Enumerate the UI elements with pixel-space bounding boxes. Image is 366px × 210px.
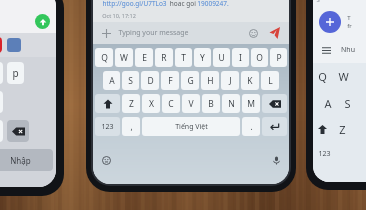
staticText: http://goo.gl/U7TLo3 <box>102 0 167 8</box>
staticText: Nhu <box>341 45 355 55</box>
button[interactable]: o <box>0 62 3 84</box>
staticText: Z <box>129 98 134 110</box>
staticText: . <box>250 121 253 132</box>
staticText: L <box>268 75 273 87</box>
button[interactable]: X <box>142 94 160 113</box>
button[interactable]: C <box>162 94 180 113</box>
staticText: J <box>229 75 232 87</box>
button[interactable]: Z <box>122 94 140 113</box>
button[interactable]: M <box>242 94 260 113</box>
staticText: N <box>228 98 235 110</box>
button[interactable]: Voice input <box>269 153 283 167</box>
button[interactable]: Compose <box>319 11 341 33</box>
staticText: Q <box>101 52 108 64</box>
staticText: Nhập <box>10 155 31 166</box>
staticText: A <box>109 75 115 87</box>
staticText: 123 <box>318 149 331 159</box>
button[interactable]: Nhập <box>0 149 53 171</box>
staticText: B <box>208 98 214 110</box>
staticText: R <box>161 52 167 64</box>
button[interactable]: W <box>115 48 133 67</box>
staticText: Y <box>200 52 205 64</box>
button[interactable]: Send <box>35 14 50 29</box>
staticText: S <box>128 75 133 87</box>
button[interactable]: E <box>135 48 153 67</box>
staticText: Z <box>339 122 346 137</box>
button[interactable]: U <box>213 48 230 67</box>
staticText: K <box>247 75 253 87</box>
staticText: Typing your message <box>118 28 189 38</box>
button[interactable]: D <box>141 71 159 90</box>
button[interactable]: V <box>182 94 200 113</box>
staticText: Q <box>318 69 327 84</box>
staticText: M <box>247 98 255 110</box>
staticText: A <box>324 96 332 111</box>
button[interactable] <box>7 38 21 52</box>
button[interactable]: I <box>232 48 249 67</box>
button[interactable]: A <box>103 71 120 90</box>
staticText: Tiếng Việt <box>175 122 208 132</box>
staticText: S <box>313 0 320 4</box>
staticText: 19009247. <box>197 0 229 8</box>
staticText: hoac goi <box>167 0 197 8</box>
button[interactable]: G <box>181 71 199 90</box>
button[interactable]: Backspace <box>7 120 29 142</box>
button[interactable]: L <box>261 71 279 90</box>
button[interactable]: Shift <box>95 94 120 113</box>
staticText: I <box>239 52 242 64</box>
button[interactable] <box>0 37 2 53</box>
button[interactable]: 123 <box>95 117 120 136</box>
button[interactable]: N <box>222 94 240 113</box>
staticText: p <box>12 66 19 80</box>
button[interactable]: . <box>242 117 260 136</box>
staticText: P <box>276 52 282 64</box>
button[interactable]: Q <box>95 48 113 67</box>
button[interactable]: Y <box>194 48 211 67</box>
staticText: W <box>120 52 128 64</box>
button[interactable]: Enter <box>262 117 287 136</box>
button[interactable]: Add attachment <box>100 27 113 40</box>
button[interactable]: S <box>122 71 139 90</box>
button[interactable]: K <box>241 71 259 90</box>
button[interactable]: m <box>0 120 3 142</box>
button[interactable]: Typing your message <box>118 28 247 38</box>
button[interactable]: Send <box>266 25 282 41</box>
staticText: 123 <box>101 122 114 132</box>
button[interactable]: Emoji <box>247 27 259 39</box>
staticText: V <box>188 98 194 110</box>
button[interactable]: Menu <box>319 43 333 57</box>
staticText: T <box>181 52 186 64</box>
button[interactable]: H <box>201 71 219 90</box>
staticText: fr <box>347 22 352 30</box>
staticText: U <box>218 52 225 64</box>
button[interactable]: R <box>155 48 173 67</box>
button[interactable]: , <box>122 117 140 136</box>
staticText: S <box>344 96 351 111</box>
button[interactable]: F <box>161 71 179 90</box>
staticText: D <box>147 75 154 87</box>
staticText: G <box>187 75 194 87</box>
staticText: X <box>149 98 154 110</box>
staticText: W <box>338 69 349 84</box>
staticText: O <box>256 52 263 64</box>
button[interactable]: Tiếng Việt <box>142 117 240 136</box>
staticText: Oct 10, 17:12 <box>102 12 136 19</box>
button[interactable]: Backspace <box>262 94 287 113</box>
button[interactable]: J <box>221 71 239 90</box>
button[interactable]: B <box>202 94 220 113</box>
staticText: F <box>168 75 173 87</box>
button[interactable]: Emoji <box>99 153 113 167</box>
button[interactable]: l <box>0 91 3 113</box>
staticText: H <box>207 75 214 87</box>
button[interactable]: P <box>270 48 287 67</box>
button[interactable]: p <box>7 62 24 84</box>
button[interactable]: T <box>175 48 192 67</box>
staticText: E <box>142 52 147 64</box>
staticText: , <box>130 121 133 132</box>
staticText: T <box>347 14 351 22</box>
staticText: C <box>168 98 174 110</box>
button[interactable]: O <box>251 48 268 67</box>
